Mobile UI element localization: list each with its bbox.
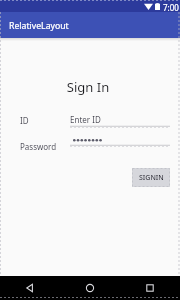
staticText: ID — [20, 115, 29, 126]
staticText: 7:00 — [163, 2, 179, 13]
staticText: SIGNIN — [139, 173, 164, 183]
staticText: Enter ID — [70, 114, 101, 125]
button[interactable]: Recents — [145, 283, 155, 293]
button[interactable]: SIGNIN — [132, 168, 170, 187]
staticText: Sign In — [0, 78, 178, 96]
button[interactable]: Back — [25, 283, 35, 293]
button[interactable]: Home — [85, 283, 95, 293]
staticText: Password — [20, 141, 57, 152]
staticText: RelativeLayout — [9, 20, 69, 32]
